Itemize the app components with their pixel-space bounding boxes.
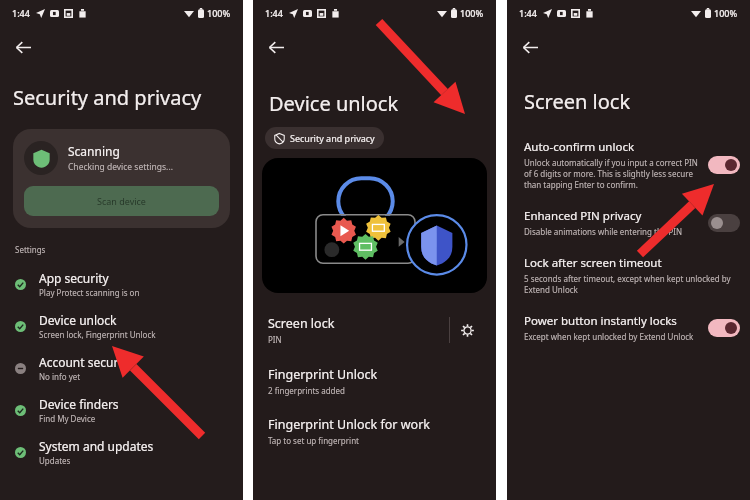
button[interactable]: App security (0, 263, 243, 305)
staticText: Fingerprint Unlock (268, 366, 378, 383)
button[interactable]: Auto-confirm unlock (507, 137, 750, 192)
staticText: Screen lock (268, 315, 335, 332)
staticText: 5 seconds after timeout, except when kep… (524, 273, 732, 295)
staticText: 100% (460, 7, 484, 19)
staticText: No info yet (39, 371, 81, 382)
staticText: 100% (207, 7, 231, 19)
button[interactable]: Screen lock (253, 309, 496, 351)
button[interactable]: Account security (0, 347, 243, 389)
staticText: 1:44 (265, 7, 283, 19)
staticText: Updates (39, 455, 71, 466)
button[interactable]: Auto-confirm unlock (708, 156, 740, 174)
staticText: Fingerprint Unlock for work (268, 416, 430, 433)
staticText: Device unlock (269, 90, 399, 117)
staticText: Disable animations while entering the PI… (524, 226, 683, 237)
button[interactable]: Fingerprint Unlock for work (253, 413, 496, 449)
staticText: Device unlock (39, 312, 117, 328)
button[interactable]: Screen lock settings (450, 313, 484, 347)
staticText: 1:44 (519, 7, 537, 19)
staticText: Power button instantly locks (524, 313, 677, 329)
staticText: Account security (39, 354, 132, 370)
staticText: 1:44 (12, 7, 30, 19)
button[interactable]: Back (261, 32, 291, 62)
button[interactable]: Back (8, 32, 38, 62)
staticText: 100% (714, 7, 738, 19)
staticText: System and updates (39, 438, 154, 454)
button[interactable]: Power button instantly locks (507, 311, 750, 344)
staticText: Auto-confirm unlock (524, 139, 635, 155)
staticText: Device finders (39, 396, 119, 412)
staticText: Screen lock (524, 88, 631, 115)
staticText: Screen lock, Fingerprint Unlock (39, 329, 156, 340)
button[interactable]: Fingerprint Unlock (253, 363, 496, 399)
staticText: Checking device settings... (68, 161, 173, 173)
staticText: 2 fingerprints added (268, 385, 345, 396)
staticText: Security and privacy (13, 84, 202, 111)
staticText: Security and privacy (290, 132, 375, 144)
button[interactable]: Enhanced PIN privacy (708, 214, 740, 232)
staticText: Except when kept unlocked by Extend Unlo… (524, 331, 694, 342)
staticText: Play Protect scanning is on (39, 287, 140, 298)
button[interactable]: Lock after screen timeout (507, 253, 750, 297)
button[interactable]: Enhanced PIN privacy (507, 206, 750, 239)
button[interactable]: Device finders (0, 389, 243, 431)
button[interactable]: Scanning (13, 129, 230, 228)
staticText: Enhanced PIN privacy (524, 208, 642, 224)
staticText: Find My Device (39, 413, 96, 424)
staticText: App security (39, 270, 109, 286)
button[interactable]: Scan device (24, 186, 219, 216)
button[interactable]: Power button instantly locks (708, 319, 740, 337)
staticText: PIN (268, 334, 282, 345)
button[interactable]: Device unlock (0, 305, 243, 347)
button[interactable]: System and updates (0, 431, 243, 473)
staticText: Scan device (97, 195, 146, 207)
button[interactable]: Security and privacy (265, 127, 384, 149)
button[interactable]: Back (515, 32, 545, 62)
staticText: Settings (15, 244, 46, 255)
staticText: Lock after screen timeout (524, 255, 662, 271)
staticText: Tap to set up fingerprint (268, 435, 359, 446)
staticText: Scanning (68, 143, 120, 159)
staticText: Unlock automatically if you input a corr… (524, 157, 700, 190)
